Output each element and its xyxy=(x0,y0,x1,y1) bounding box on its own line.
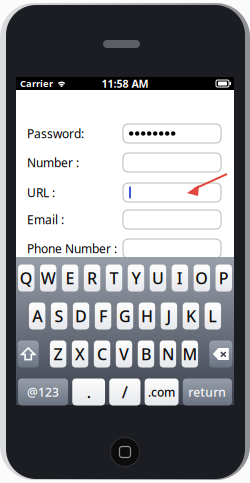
button[interactable]: I xyxy=(172,264,188,291)
staticText: T xyxy=(109,267,118,289)
staticText: I xyxy=(177,267,183,289)
staticText: R xyxy=(87,267,97,289)
staticText: J xyxy=(166,305,171,327)
staticText: N xyxy=(162,343,174,365)
button[interactable]: Q xyxy=(18,264,34,291)
staticText: .com xyxy=(148,384,175,400)
staticText: M xyxy=(182,343,197,365)
button[interactable]: B xyxy=(138,340,154,367)
button[interactable]: A xyxy=(29,302,45,329)
staticText: Carrier xyxy=(20,77,53,90)
button[interactable]: Delete xyxy=(209,340,232,367)
staticText: 11:58 AM xyxy=(101,76,148,91)
button[interactable]: V xyxy=(116,340,132,367)
button[interactable]: D xyxy=(73,302,89,329)
staticText: E xyxy=(66,267,75,289)
staticText: X xyxy=(75,343,85,365)
button[interactable]: W xyxy=(40,264,56,291)
button[interactable]: return xyxy=(183,378,232,405)
staticText: C xyxy=(97,343,107,365)
button[interactable]: / xyxy=(109,378,140,405)
staticText: Number : xyxy=(27,154,79,170)
staticText: URL : xyxy=(27,184,55,200)
button[interactable]: E xyxy=(62,264,78,291)
button[interactable]: M xyxy=(182,340,198,367)
button[interactable]: X xyxy=(72,340,88,367)
button[interactable]: Z xyxy=(50,340,66,367)
staticText: S xyxy=(55,305,64,327)
staticText: P xyxy=(219,267,229,289)
button[interactable]: Shift xyxy=(18,340,39,367)
button[interactable]: O xyxy=(194,264,210,291)
staticText: H xyxy=(141,305,153,327)
button[interactable]: F xyxy=(95,302,111,329)
button[interactable]: C xyxy=(94,340,110,367)
staticText: Y xyxy=(131,267,140,289)
button[interactable]: H xyxy=(139,302,155,329)
staticText: A xyxy=(32,305,42,327)
staticText: D xyxy=(75,305,87,327)
button[interactable]: J xyxy=(161,302,177,329)
staticText: Z xyxy=(54,343,63,365)
staticText: V xyxy=(119,343,129,365)
staticText: Phone Number : xyxy=(27,240,117,256)
button[interactable]: L xyxy=(205,302,221,329)
button[interactable]: .com xyxy=(145,378,178,405)
staticText: F xyxy=(99,305,107,327)
button[interactable]: P xyxy=(216,264,232,291)
staticText: @123 xyxy=(27,384,59,400)
button[interactable]: U xyxy=(150,264,166,291)
staticText: Password: xyxy=(27,125,84,141)
staticText: O xyxy=(195,267,208,289)
button[interactable]: Home xyxy=(110,437,140,467)
staticText: / xyxy=(122,381,128,403)
staticText: return xyxy=(188,384,226,400)
staticText: W xyxy=(41,267,56,289)
staticText: U xyxy=(152,267,164,289)
button[interactable]: @123 xyxy=(18,378,68,405)
staticText: Q xyxy=(20,267,33,289)
button[interactable]: G xyxy=(117,302,133,329)
button[interactable]: N xyxy=(160,340,176,367)
staticText: K xyxy=(186,305,196,327)
staticText: . xyxy=(87,381,91,403)
button[interactable]: K xyxy=(183,302,199,329)
staticText: G xyxy=(119,305,131,327)
staticText: B xyxy=(141,343,151,365)
button[interactable]: R xyxy=(84,264,100,291)
button[interactable]: Y xyxy=(128,264,144,291)
button[interactable]: T xyxy=(106,264,122,291)
staticText: L xyxy=(208,305,217,327)
staticText: Email : xyxy=(27,211,64,227)
button[interactable]: S xyxy=(51,302,67,329)
button[interactable]: . xyxy=(72,378,105,405)
